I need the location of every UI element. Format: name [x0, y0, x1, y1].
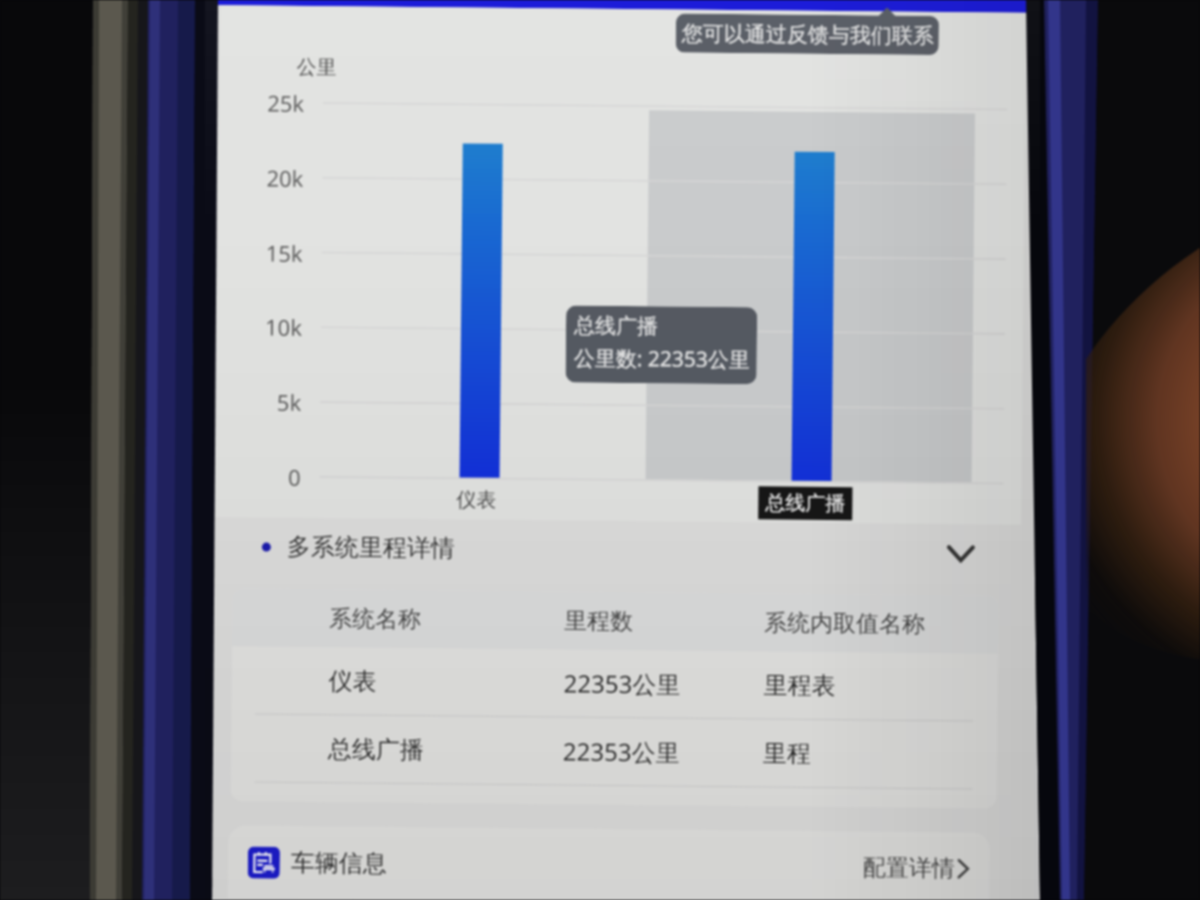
staticText: 系统名称 [329, 604, 421, 634]
staticText: 仪表 [456, 487, 496, 513]
button[interactable]: 仪表 [231, 646, 998, 721]
button[interactable]: 总线广播 [231, 714, 997, 789]
staticText: 里程 [763, 738, 811, 769]
staticText: 总线广播 [328, 734, 424, 765]
staticText: 0 [239, 461, 301, 492]
staticText: 配置详情 [863, 853, 955, 883]
staticText: 多系统里程详情 [287, 532, 455, 563]
staticText: 总线广播 [574, 312, 658, 339]
staticText: 里程数 [564, 606, 633, 636]
staticText: 总线广播 [765, 490, 845, 516]
staticText: 车辆信息 [291, 848, 387, 879]
staticText: 仪表 [328, 666, 377, 697]
button[interactable]: 配置详情 [863, 853, 968, 883]
staticText: 15k [242, 237, 303, 268]
staticText: 公里数: 22353公里 [574, 343, 751, 374]
button[interactable]: 多系统里程详情 [215, 524, 1021, 576]
staticText: 系统内取值名称 [764, 608, 925, 639]
staticText: 20k [242, 162, 304, 193]
staticText: 您可以通过反馈与我们联系 [682, 21, 934, 49]
staticText: 公里 [296, 55, 337, 80]
other: 车辆信息 [248, 846, 280, 879]
button[interactable]: 您可以通过反馈与我们联系 [676, 13, 939, 55]
staticText: 10k [241, 311, 302, 342]
staticText: 5k [240, 386, 301, 417]
staticText: 22353公里 [563, 734, 680, 769]
staticText: 里程表 [763, 670, 836, 701]
staticText: 22353公里 [563, 666, 681, 701]
staticText: 25k [243, 87, 304, 118]
